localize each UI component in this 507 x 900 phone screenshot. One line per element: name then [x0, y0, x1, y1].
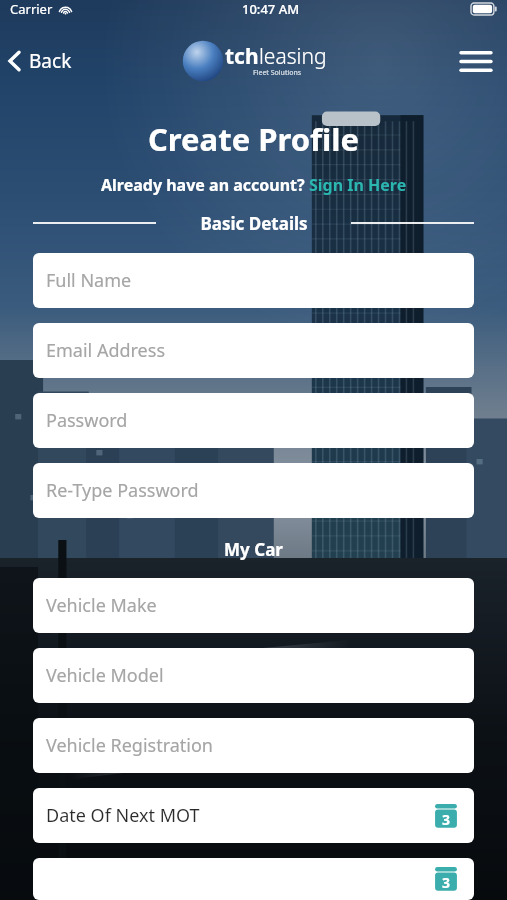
button[interactable]: Back — [0, 42, 84, 80]
staticText: Full Name — [46, 268, 461, 293]
button[interactable]: Vehicle Model — [33, 648, 474, 703]
button[interactable]: Pick date — [431, 864, 461, 894]
staticText: 10:47 AM — [242, 0, 300, 18]
staticText: Email Address — [46, 338, 461, 363]
staticText: 3 — [442, 810, 451, 829]
staticText: Vehicle Make — [46, 593, 461, 618]
staticText: Basic Details — [200, 212, 308, 235]
button[interactable]: Menu — [445, 39, 507, 84]
staticText: Password — [46, 408, 461, 433]
staticText: 3 — [442, 873, 451, 892]
button[interactable]: Date Of Next MOT — [33, 788, 474, 843]
staticText: Sign In Here — [309, 174, 407, 196]
staticText: Already have an account? — [101, 174, 309, 196]
staticText: Create Profile — [0, 118, 507, 160]
staticText: Vehicle Registration — [46, 733, 461, 758]
staticText: Back — [29, 48, 72, 74]
staticText: Carrier — [10, 0, 53, 18]
button[interactable]: Pick date — [431, 801, 461, 831]
button[interactable]: Full Name — [33, 253, 474, 308]
staticText: Re-Type Password — [46, 478, 461, 503]
staticText: Vehicle Model — [46, 663, 461, 688]
button[interactable]: Email Address — [33, 323, 474, 378]
staticText: My Car — [224, 538, 283, 561]
button[interactable]: Password — [33, 393, 474, 448]
staticText: Fleet Solutions — [253, 68, 302, 78]
staticText: leasing — [259, 42, 327, 71]
button[interactable]: Vehicle Registration — [33, 718, 474, 773]
button[interactable]: Re-Type Password — [33, 463, 474, 518]
button[interactable]: Vehicle Make — [33, 578, 474, 633]
button[interactable]: Sign In Here — [309, 174, 407, 196]
staticText: Date Of Next MOT — [46, 803, 431, 828]
button[interactable]: Pick date — [33, 858, 474, 900]
staticText: tch — [225, 42, 259, 71]
button[interactable]: tch — [181, 39, 327, 83]
